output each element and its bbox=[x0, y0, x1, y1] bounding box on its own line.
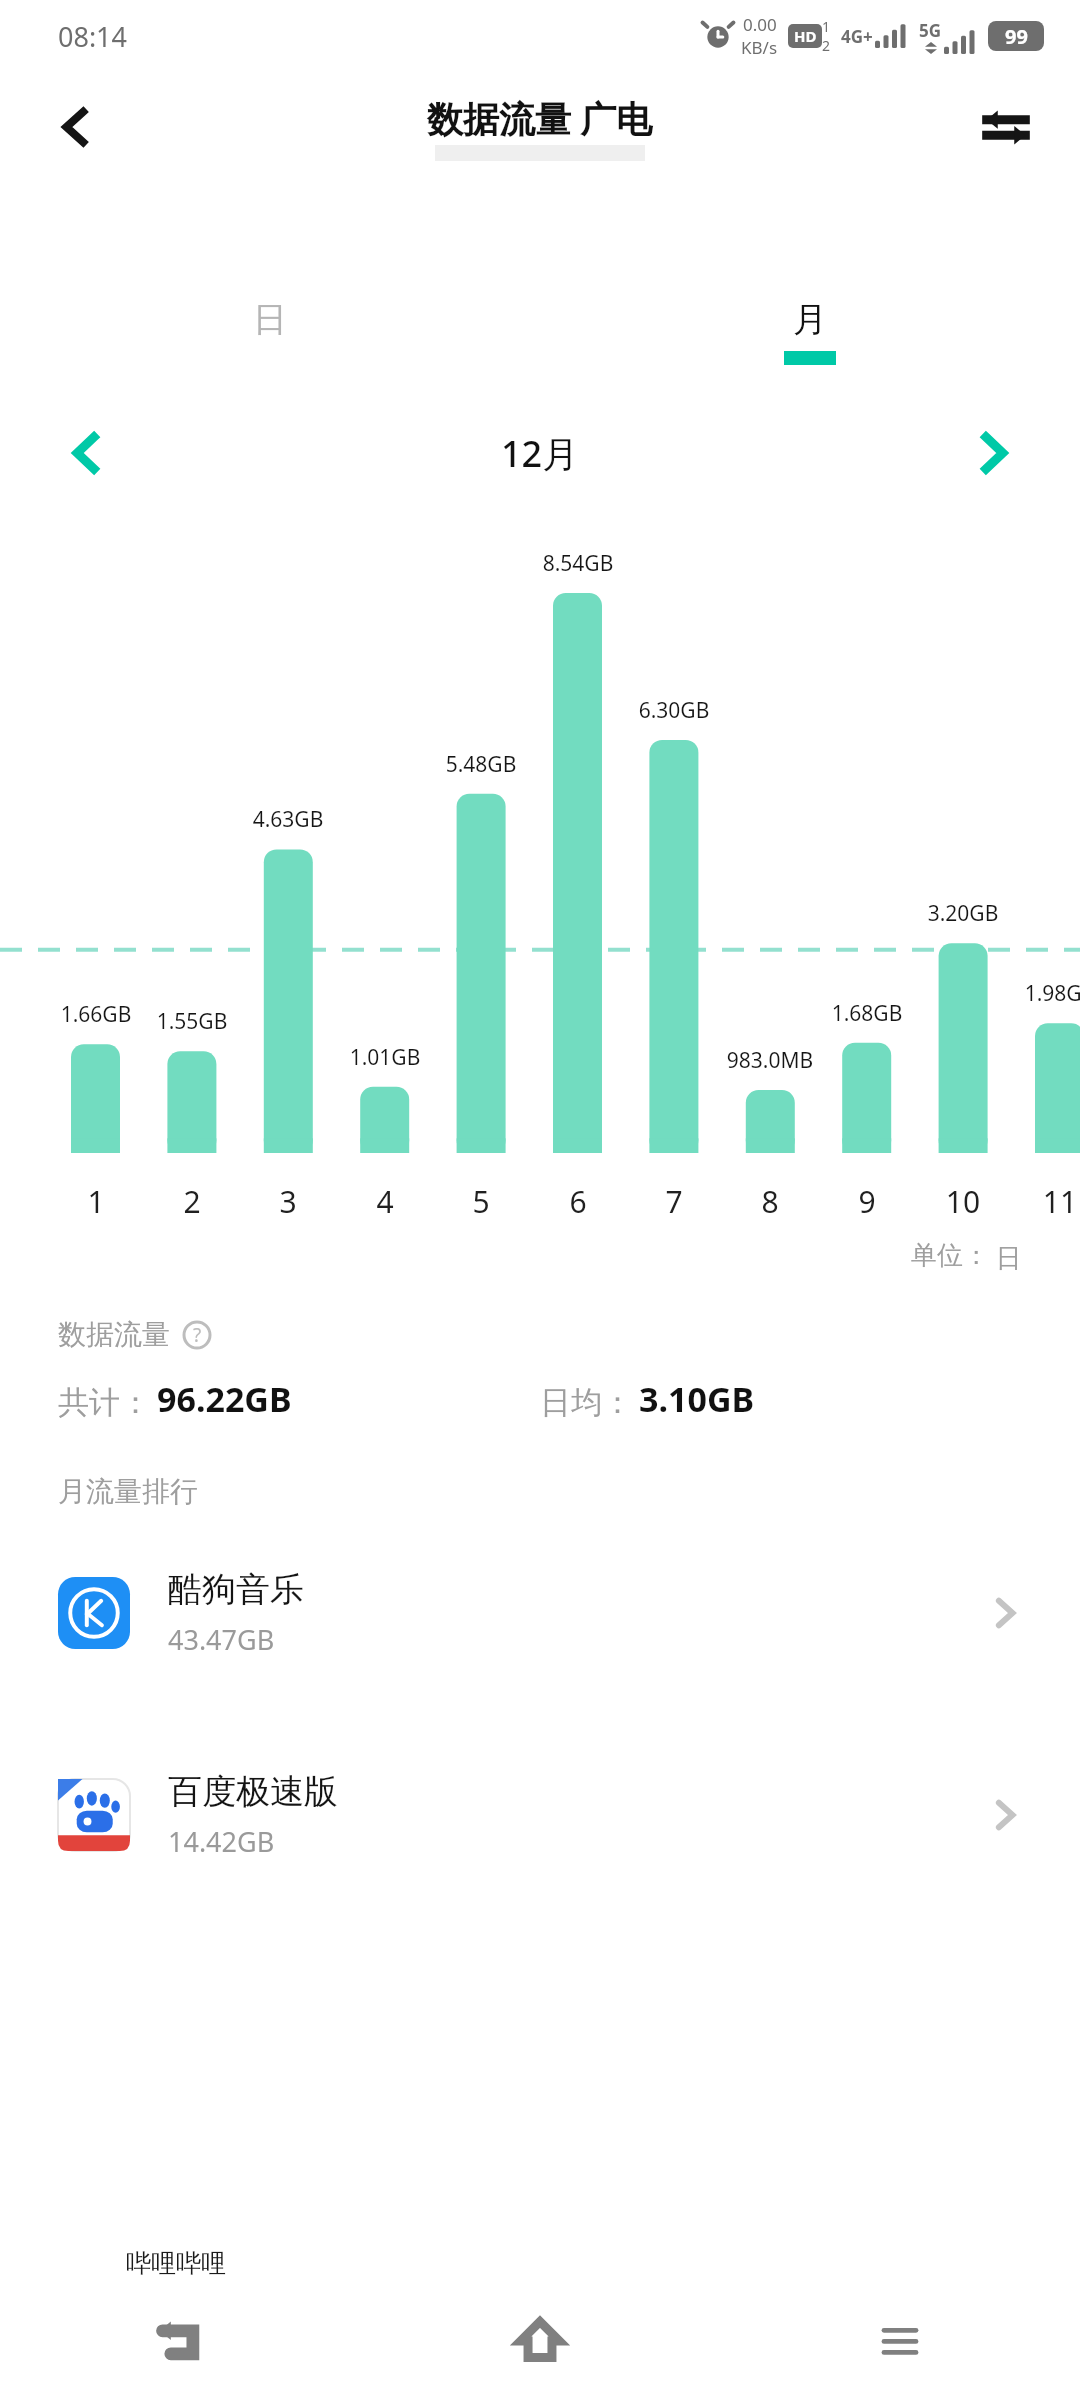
staticText: 单位： bbox=[911, 1239, 989, 1272]
staticText: 4.63GB bbox=[240, 805, 336, 834]
staticText: 2 bbox=[822, 36, 831, 55]
staticText: 共计： bbox=[58, 1383, 151, 1422]
staticText: 酷狗音乐 bbox=[168, 1568, 304, 1611]
button[interactable]: Help bbox=[180, 1318, 214, 1352]
staticText: KB/s bbox=[741, 36, 778, 59]
staticText: 日均： bbox=[540, 1383, 633, 1422]
staticText: 1.01GB bbox=[337, 1043, 433, 1072]
staticText: 1 bbox=[56, 1181, 136, 1222]
staticText: 11 bbox=[1020, 1181, 1080, 1222]
staticText: 08:14 bbox=[58, 18, 128, 55]
staticText: 96.22GB bbox=[157, 1376, 292, 1422]
staticText: 数据流量 广电 bbox=[427, 94, 653, 143]
button[interactable]: 百度极速版 bbox=[0, 1755, 1080, 1875]
staticText: 1.66GB bbox=[48, 1000, 144, 1029]
staticText: 3.10GB bbox=[639, 1376, 755, 1422]
staticText: 1 bbox=[822, 17, 831, 36]
staticText: 2 bbox=[152, 1181, 232, 1222]
staticText: 月 bbox=[793, 298, 827, 341]
button[interactable]: Back bbox=[40, 91, 112, 163]
staticText: 5G bbox=[919, 19, 942, 42]
staticText: 1.98GB bbox=[1012, 979, 1080, 1008]
staticText: 月流量排行 bbox=[58, 1474, 198, 1509]
staticText: 5.48GB bbox=[433, 750, 529, 779]
staticText: HD bbox=[794, 26, 817, 46]
staticText: 日 bbox=[253, 298, 287, 341]
staticText: 哔哩哔哩 bbox=[126, 2248, 226, 2279]
staticText: 1.68GB bbox=[819, 999, 915, 1028]
staticText: 3.20GB bbox=[915, 899, 1011, 928]
staticText: 8 bbox=[730, 1181, 810, 1222]
staticText: 5 bbox=[441, 1181, 521, 1222]
button[interactable]: Switch SIM bbox=[970, 91, 1042, 163]
button[interactable]: Next month bbox=[958, 417, 1030, 489]
staticText: 6.30GB bbox=[626, 696, 722, 725]
staticText: 99 bbox=[1005, 23, 1028, 50]
button[interactable]: Back bbox=[0, 2280, 360, 2400]
staticText: ? bbox=[193, 1322, 202, 1348]
staticText: 10 bbox=[923, 1181, 1003, 1222]
staticText: 百度极速版 bbox=[168, 1770, 338, 1813]
staticText: 4 bbox=[345, 1181, 425, 1222]
staticText: 4G+ bbox=[841, 25, 873, 48]
button[interactable]: Previous month bbox=[50, 417, 122, 489]
staticText: 日 bbox=[989, 1239, 1022, 1275]
staticText: 6 bbox=[538, 1181, 618, 1222]
button[interactable]: Home bbox=[360, 2280, 720, 2400]
button[interactable]: 酷狗音乐 bbox=[0, 1553, 1080, 1673]
staticText: 3 bbox=[248, 1181, 328, 1222]
button[interactable]: Recent apps bbox=[720, 2280, 1080, 2400]
staticText: 983.0MB bbox=[722, 1046, 818, 1075]
button[interactable]: 月 bbox=[784, 298, 836, 365]
staticText: 43.47GB bbox=[168, 1621, 275, 1658]
staticText: 7 bbox=[634, 1181, 714, 1222]
staticText: 9 bbox=[827, 1181, 907, 1222]
staticText: 12月 bbox=[501, 429, 579, 478]
staticText: 数据流量 bbox=[58, 1317, 170, 1352]
staticText: 1.55GB bbox=[144, 1007, 240, 1036]
staticText: 14.42GB bbox=[168, 1823, 275, 1860]
staticText: 0.00 bbox=[743, 13, 777, 36]
staticText: 8.54GB bbox=[530, 549, 626, 578]
button[interactable]: 日 bbox=[244, 298, 296, 365]
